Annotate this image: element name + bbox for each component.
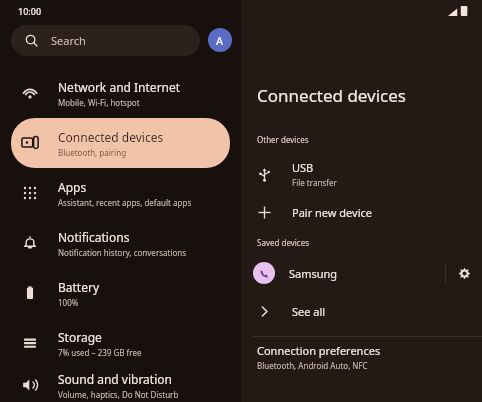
button[interactable]: Apps bbox=[0, 168, 241, 218]
staticText: Notifications bbox=[58, 229, 130, 245]
button[interactable]: Sound and vibration bbox=[0, 368, 241, 402]
staticText: File transfer bbox=[292, 177, 337, 188]
staticText: Apps bbox=[58, 179, 87, 195]
button[interactable]: USB bbox=[241, 155, 482, 193]
staticText: Sound and vibration bbox=[58, 371, 172, 387]
button[interactable]: See all bbox=[241, 292, 482, 330]
button[interactable]: Search bbox=[11, 25, 200, 56]
staticText: Other devices bbox=[257, 134, 309, 145]
staticText: Assistant, recent apps, default apps bbox=[58, 197, 192, 208]
button[interactable]: Notifications bbox=[0, 218, 241, 268]
button[interactable]: Storage bbox=[0, 318, 241, 368]
staticText: USB bbox=[292, 160, 314, 175]
staticText: Bluetooth, pairing bbox=[58, 147, 127, 158]
staticText: A bbox=[216, 33, 224, 48]
staticText: Network and Internet bbox=[58, 79, 181, 95]
button[interactable]: Battery bbox=[0, 268, 241, 318]
staticText: Pair new device bbox=[292, 205, 373, 220]
button[interactable]: Connected devices bbox=[11, 118, 230, 168]
staticText: Connected devices bbox=[58, 129, 164, 145]
staticText: 7% used – 239 GB free bbox=[58, 347, 142, 358]
staticText: Storage bbox=[58, 329, 102, 345]
staticText: Connected devices bbox=[257, 84, 407, 107]
staticText: Notification history, conversations bbox=[58, 247, 187, 258]
staticText: Samsung bbox=[289, 266, 338, 281]
button[interactable]: Connection preferences bbox=[241, 337, 482, 377]
button[interactable]: Device settings bbox=[446, 254, 482, 292]
staticText: 10:00 bbox=[18, 5, 42, 17]
staticText: Connection preferences bbox=[257, 343, 381, 358]
staticText: Saved devices bbox=[257, 237, 310, 248]
staticText: Search bbox=[51, 33, 86, 48]
staticText: Bluetooth, Android Auto, NFC bbox=[257, 360, 368, 371]
button[interactable]: Account bbox=[208, 28, 232, 52]
staticText: See all bbox=[292, 304, 326, 319]
button[interactable]: Network and Internet bbox=[0, 68, 241, 118]
staticText: Volume, haptics, Do Not Disturb bbox=[58, 389, 179, 400]
button[interactable]: Samsung bbox=[241, 254, 445, 292]
staticText: 100% bbox=[58, 297, 79, 308]
staticText: Battery bbox=[58, 279, 100, 295]
staticText: Mobile, Wi-Fi, hotspot bbox=[58, 97, 140, 108]
button[interactable]: Pair new device bbox=[241, 193, 482, 231]
